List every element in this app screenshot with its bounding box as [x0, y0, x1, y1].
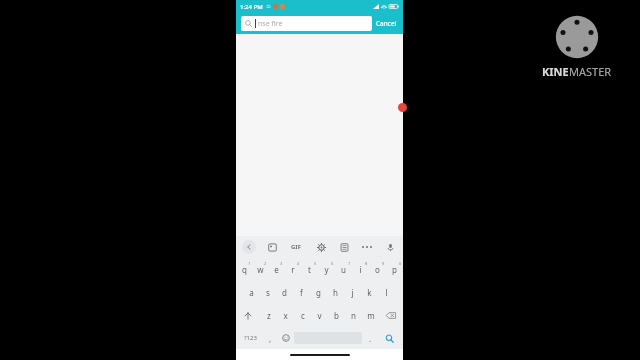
button[interactable]: e — [268, 258, 284, 281]
staticText: s — [266, 287, 270, 298]
button[interactable]: a — [243, 281, 259, 304]
button[interactable]: y — [318, 258, 335, 281]
button[interactable]: Search — [378, 327, 401, 349]
staticText: e — [274, 264, 279, 275]
button[interactable]: Comma — [262, 327, 278, 349]
button[interactable]: h — [327, 281, 344, 304]
button[interactable]: GIF — [288, 239, 304, 255]
button[interactable]: b — [328, 304, 345, 327]
staticText: w — [257, 264, 264, 275]
staticText: n — [351, 310, 356, 321]
button[interactable]: ?123 — [238, 327, 262, 349]
button[interactable]: Clipboard — [337, 240, 351, 254]
button[interactable]: nse fire — [241, 16, 372, 31]
staticText: . — [369, 333, 372, 344]
button[interactable]: Stickers — [265, 240, 279, 254]
staticText: d — [282, 287, 287, 298]
staticText: h — [333, 287, 338, 298]
staticText: KINE — [542, 64, 569, 79]
button[interactable]: w — [252, 258, 268, 281]
staticText: k — [367, 287, 372, 298]
button[interactable]: c — [294, 304, 311, 327]
staticText: x — [283, 310, 288, 321]
staticText: 0 — [399, 261, 402, 266]
button[interactable]: Shift — [236, 304, 260, 327]
button[interactable]: j — [344, 281, 361, 304]
staticText: ?123 — [244, 334, 257, 342]
staticText: f — [300, 287, 303, 298]
staticText: Cancel — [376, 19, 397, 28]
staticText: 1 — [248, 261, 251, 266]
staticText: 7 — [348, 261, 351, 266]
staticText: m — [367, 310, 375, 321]
button[interactable]: g — [310, 281, 327, 304]
staticText: 5 — [314, 261, 317, 266]
button[interactable]: Voice input — [383, 240, 397, 254]
button[interactable]: More — [360, 240, 374, 254]
button[interactable]: Settings — [314, 240, 328, 254]
staticText: r — [291, 264, 295, 275]
button[interactable]: Cancel — [372, 16, 401, 31]
staticText: MASTER — [569, 64, 612, 79]
button[interactable]: l — [378, 281, 395, 304]
staticText: 8 — [365, 261, 368, 266]
staticText: i — [359, 264, 362, 275]
button[interactable]: m — [362, 304, 379, 327]
button[interactable]: r — [284, 258, 301, 281]
staticText: c — [301, 310, 305, 321]
staticText: 9 — [382, 261, 385, 266]
button[interactable]: z — [260, 304, 277, 327]
button[interactable]: v — [311, 304, 328, 327]
staticText: y — [324, 264, 329, 275]
staticText: v — [317, 310, 322, 321]
button[interactable]: d — [276, 281, 293, 304]
staticText: g — [316, 287, 321, 298]
button[interactable]: i — [352, 258, 369, 281]
staticText: 4 — [297, 261, 300, 266]
staticText: 2 — [264, 261, 267, 266]
button[interactable]: t — [301, 258, 318, 281]
staticText: p — [392, 264, 397, 275]
staticText: GIF — [291, 243, 301, 251]
staticText: o — [375, 264, 380, 275]
button[interactable]: s — [259, 281, 276, 304]
button[interactable]: k — [361, 281, 378, 304]
staticText: 1:24 PM — [240, 3, 263, 11]
staticText: nse fire — [258, 19, 283, 29]
staticText: 3 — [280, 261, 283, 266]
staticText: j — [351, 287, 354, 298]
staticText: a — [249, 287, 254, 298]
button[interactable]: o — [369, 258, 386, 281]
staticText: l — [385, 287, 388, 298]
staticText: , — [269, 333, 272, 344]
button[interactable]: x — [277, 304, 294, 327]
button[interactable]: q — [236, 258, 252, 281]
button[interactable]: n — [345, 304, 362, 327]
button[interactable]: Emoji — [278, 327, 294, 349]
button[interactable]: Back — [242, 240, 256, 254]
button[interactable]: p — [386, 258, 403, 281]
button[interactable]: Backspace — [379, 304, 403, 327]
button[interactable]: u — [335, 258, 352, 281]
button[interactable]: Period — [362, 327, 378, 349]
staticText: z — [267, 310, 271, 321]
staticText: q — [242, 264, 247, 275]
staticText: 6 — [331, 261, 334, 266]
staticText: t — [308, 264, 311, 275]
staticText: b — [334, 310, 339, 321]
button[interactable]: f — [293, 281, 310, 304]
staticText: u — [341, 264, 346, 275]
